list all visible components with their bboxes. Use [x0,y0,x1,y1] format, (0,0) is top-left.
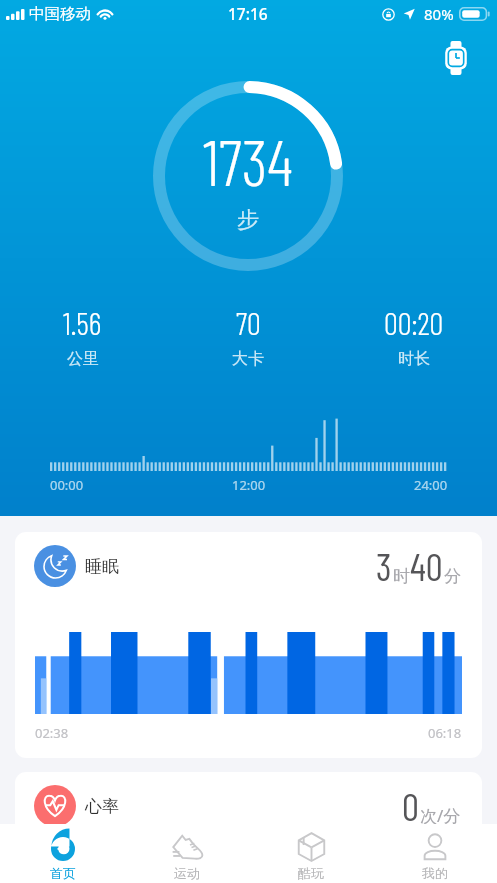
staticText: 分 [444,566,461,587]
staticText: 0 [402,783,419,829]
staticText: 00:20 [384,304,444,341]
staticText: 睡眠 [85,556,119,577]
button[interactable]: 1.56 [0,304,165,369]
staticText: 我的 [422,865,448,881]
staticText: 80% [424,4,454,24]
staticText: 大卡 [232,349,264,369]
staticText: 1.56 [63,304,102,341]
staticText: 时 [393,566,410,587]
staticText: 06:18 [428,724,462,742]
staticText: 时长 [398,349,430,369]
button[interactable]: 心率 [15,772,482,883]
button[interactable]: 酷玩 [249,824,373,883]
staticText: 公里 [67,349,99,369]
staticText: 中国移动 [29,4,91,24]
staticText: 70 [236,304,261,341]
staticText: 酷玩 [298,865,324,881]
staticText: 心率 [85,796,119,817]
staticText: 12:00 [232,476,266,494]
staticText: 02:38 [35,724,69,742]
button[interactable]: 00:20 [331,304,497,369]
staticText: 次/分 [420,804,461,827]
staticText: 运动 [174,865,200,881]
staticText: 首页 [50,865,76,881]
staticText: 步 [237,206,259,234]
button[interactable]: 首页 [0,824,125,883]
staticText: 40 [410,543,443,589]
button[interactable]: 运动 [125,824,249,883]
staticText: 1734 [203,122,293,199]
button[interactable]: 睡眠 [15,532,482,758]
staticText: 24:00 [414,476,448,494]
staticText: 00:00 [50,476,84,494]
button[interactable]: 我的 [373,824,497,883]
button[interactable]: Connected watch [442,41,470,75]
staticText: 17:16 [228,3,268,24]
staticText: 3 [376,543,392,589]
button[interactable]: 70 [165,304,331,369]
